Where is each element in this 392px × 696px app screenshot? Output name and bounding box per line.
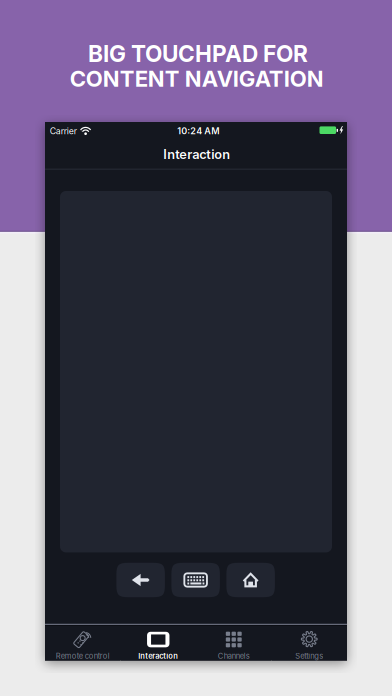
staticText: Interaction bbox=[138, 651, 178, 661]
button[interactable]: Keyboard bbox=[171, 563, 220, 597]
staticText: Interaction bbox=[163, 147, 230, 162]
button[interactable]: Back bbox=[116, 563, 165, 597]
staticText: Channels bbox=[218, 651, 250, 661]
staticText: Settings bbox=[295, 651, 323, 661]
button[interactable]: Settings bbox=[271, 626, 347, 661]
staticText: CONTENT NAVIGATION bbox=[70, 65, 324, 92]
staticText: 10:24 AM bbox=[177, 125, 219, 136]
button[interactable]: Remote control bbox=[45, 626, 120, 661]
button[interactable]: Channels bbox=[196, 626, 271, 661]
staticText: BIG TOUCHPAD FOR bbox=[88, 40, 308, 67]
staticText: Remote control bbox=[56, 651, 110, 661]
staticText: Carrier bbox=[50, 126, 77, 136]
button[interactable]: Interaction bbox=[120, 626, 196, 661]
button[interactable]: Home bbox=[226, 563, 275, 597]
